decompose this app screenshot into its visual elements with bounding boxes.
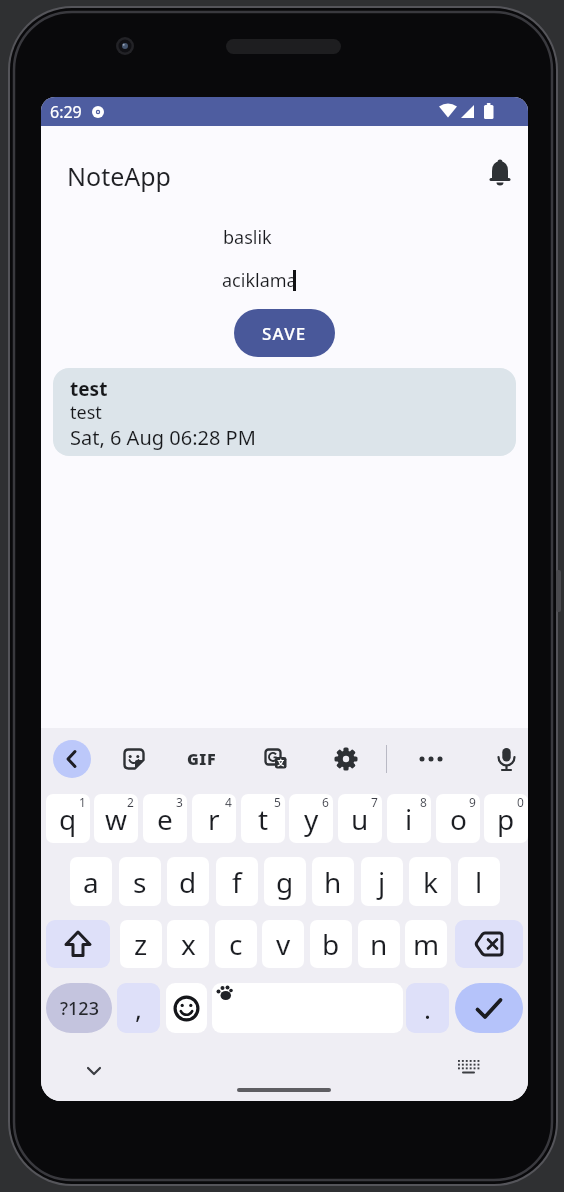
staticText: test [70,400,102,425]
staticText: GIF [187,748,217,770]
staticText: . [424,991,431,1026]
staticText: SAVE [262,322,307,345]
button[interactable] [46,920,110,968]
staticText: 7 [371,794,378,810]
staticText: s [133,863,147,901]
button[interactable]: , [117,983,160,1033]
button[interactable] [113,738,155,780]
button[interactable]: g [264,857,306,906]
staticText: m [413,925,440,963]
button[interactable] [451,1054,487,1086]
button[interactable]: e [143,794,187,843]
staticText: 3 [176,794,183,810]
staticText: test [70,376,108,402]
button[interactable]: p [484,794,528,843]
button[interactable]: y [289,794,333,843]
button[interactable]: SAVE [234,309,335,357]
button[interactable] [166,983,207,1033]
staticText: NoteApp [67,159,171,193]
staticText: h [324,863,342,901]
button[interactable]: m [405,920,447,968]
button[interactable] [255,738,297,780]
staticText: p [497,800,515,838]
button[interactable]: d [167,857,209,906]
button[interactable] [325,738,367,780]
button[interactable]: v [262,920,304,968]
button[interactable]: i [387,794,431,843]
button[interactable]: s [119,857,161,906]
staticText: r [208,800,220,838]
staticText: i [405,800,413,838]
staticText: j [378,863,386,901]
button[interactable]: w [94,794,138,843]
button[interactable]: u [338,794,382,843]
button[interactable] [77,1056,111,1086]
button[interactable]: h [312,857,354,906]
button[interactable]: k [409,857,451,906]
button[interactable]: aciklama [222,268,297,293]
button[interactable] [410,738,452,780]
staticText: k [423,863,438,901]
button[interactable] [479,150,521,192]
staticText: e [157,800,173,838]
staticText: 2 [127,794,134,810]
staticText: n [370,925,388,963]
button[interactable]: r [192,794,236,843]
staticText: 1 [79,794,86,810]
button[interactable] [455,920,523,968]
staticText: 0 [517,794,524,810]
button[interactable]: . [406,983,449,1033]
staticText: c [229,925,243,963]
button[interactable]: x [167,920,209,968]
staticText: Sat, 6 Aug 06:28 PM [70,424,256,451]
staticText: 6:29 [50,101,82,123]
button[interactable]: l [458,857,500,906]
button[interactable]: z [120,920,162,968]
staticText: b [322,925,340,963]
staticText: 6 [322,794,329,810]
button[interactable]: f [216,857,258,906]
staticText: t [258,800,269,838]
button[interactable]: test [53,368,516,456]
staticText: f [232,863,242,901]
staticText: w [105,800,128,838]
staticText: a [83,863,99,901]
staticText: ?123 [60,996,99,1021]
staticText: q [59,800,77,838]
staticText: 9 [469,794,476,810]
staticText: y [304,800,319,838]
button[interactable] [212,983,403,1033]
staticText: x [181,925,196,963]
button[interactable]: o [436,794,480,843]
staticText: g [276,863,294,901]
button[interactable]: c [215,920,257,968]
staticText: v [276,925,291,963]
staticText: 4 [225,794,232,810]
button[interactable]: t [241,794,285,843]
button[interactable]: q [46,794,90,843]
button[interactable]: n [358,920,400,968]
button[interactable] [485,738,527,780]
button[interactable] [53,740,91,778]
button[interactable]: GIF [181,738,223,780]
staticText: , [135,991,142,1026]
button[interactable]: baslik [223,225,272,250]
button[interactable]: b [310,920,352,968]
staticText: o [450,800,467,838]
button[interactable]: a [70,857,112,906]
staticText: l [475,863,483,901]
button[interactable] [455,983,523,1033]
button[interactable]: ?123 [46,983,112,1033]
button[interactable]: j [361,857,403,906]
staticText: z [134,925,148,963]
staticText: d [179,863,197,901]
staticText: 5 [274,794,281,810]
staticText: 8 [420,794,427,810]
staticText: u [351,800,369,838]
